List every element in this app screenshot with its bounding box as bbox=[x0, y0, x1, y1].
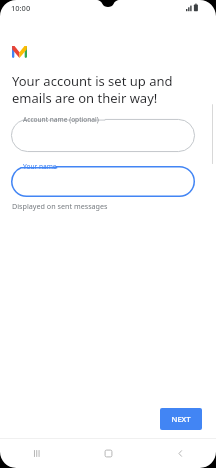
staticText: 10:00 bbox=[11, 3, 31, 13]
staticText: Displayed on sent messages bbox=[12, 201, 108, 211]
staticText: Account name (optional) bbox=[23, 115, 99, 124]
staticText: NEXT bbox=[171, 414, 191, 424]
button[interactable]: NEXT bbox=[160, 408, 202, 430]
button[interactable]: Your name bbox=[11, 166, 195, 197]
button[interactable]: Back bbox=[144, 438, 216, 468]
button[interactable]: Account name (optional) bbox=[11, 119, 195, 152]
button[interactable]: Home bbox=[72, 438, 144, 468]
staticText: Your account is set up and emails are on… bbox=[12, 72, 173, 107]
button[interactable]: Recent apps bbox=[0, 438, 72, 468]
staticText: Your name bbox=[23, 162, 57, 171]
